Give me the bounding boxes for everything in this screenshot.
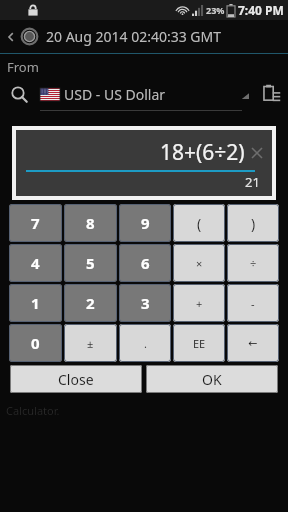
button[interactable]: USD - US Dollar xyxy=(40,79,252,109)
staticText: 6 xyxy=(141,253,150,273)
button[interactable]: 7 xyxy=(9,204,62,242)
staticText: 7 xyxy=(31,213,40,233)
staticText: - xyxy=(251,296,255,311)
button[interactable]: 1 xyxy=(9,284,62,322)
staticText: 5 xyxy=(86,253,95,273)
button[interactable]: 3 xyxy=(119,284,171,322)
staticText: . xyxy=(144,336,147,351)
staticText: USD - US Dollar xyxy=(64,85,166,104)
staticText: OK xyxy=(202,370,222,389)
staticText: 18+(6÷2) xyxy=(160,138,245,167)
button[interactable]: ← xyxy=(227,324,279,362)
button[interactable]: ( xyxy=(173,204,225,242)
staticText: 2 xyxy=(86,293,95,313)
button[interactable]: + xyxy=(173,284,225,322)
staticText: 7:40 PM xyxy=(238,2,284,18)
button[interactable]: Clipboard xyxy=(260,83,282,105)
staticText: Close xyxy=(58,370,94,389)
button[interactable]: . xyxy=(119,324,171,362)
button[interactable]: 9 xyxy=(119,204,171,242)
staticText: × xyxy=(196,256,203,271)
button[interactable]: 8 xyxy=(64,204,117,242)
staticText: Calculator. xyxy=(6,403,60,418)
staticText: 0 xyxy=(31,333,40,353)
button[interactable]: 4 xyxy=(9,244,62,282)
staticText: 1 xyxy=(31,293,40,313)
staticText: 9 xyxy=(141,213,150,233)
staticText: ) xyxy=(251,214,256,233)
staticText: 20 Aug 2014 02:40:33 GMT xyxy=(46,27,222,46)
staticText: 8 xyxy=(86,213,95,233)
button[interactable]: ÷ xyxy=(227,244,279,282)
staticText: EE xyxy=(193,336,206,351)
staticText: 21 xyxy=(245,173,260,191)
staticText: 4 xyxy=(31,253,40,273)
staticText: 23% xyxy=(206,4,225,16)
staticText: ± xyxy=(87,336,94,351)
button[interactable]: 0 xyxy=(9,324,62,362)
staticText: ÷ xyxy=(250,256,257,271)
button[interactable]: 5 xyxy=(64,244,117,282)
button[interactable]: EE xyxy=(173,324,225,362)
button[interactable]: Clear xyxy=(250,146,264,160)
other: Back xyxy=(5,31,17,43)
button[interactable]: OK xyxy=(146,365,278,393)
button[interactable]: ± xyxy=(64,324,117,362)
staticText: ← xyxy=(248,337,258,350)
button[interactable]: Back xyxy=(0,20,288,53)
staticText: + xyxy=(196,296,203,311)
staticText: 3 xyxy=(141,293,150,313)
button[interactable]: Search xyxy=(10,85,29,104)
button[interactable]: × xyxy=(173,244,225,282)
staticText: From xyxy=(7,58,39,76)
button[interactable]: 2 xyxy=(64,284,117,322)
button[interactable]: - xyxy=(227,284,279,322)
staticText: ( xyxy=(197,214,202,233)
button[interactable]: Close xyxy=(10,365,142,393)
button[interactable]: 6 xyxy=(119,244,171,282)
button[interactable]: ) xyxy=(227,204,279,242)
